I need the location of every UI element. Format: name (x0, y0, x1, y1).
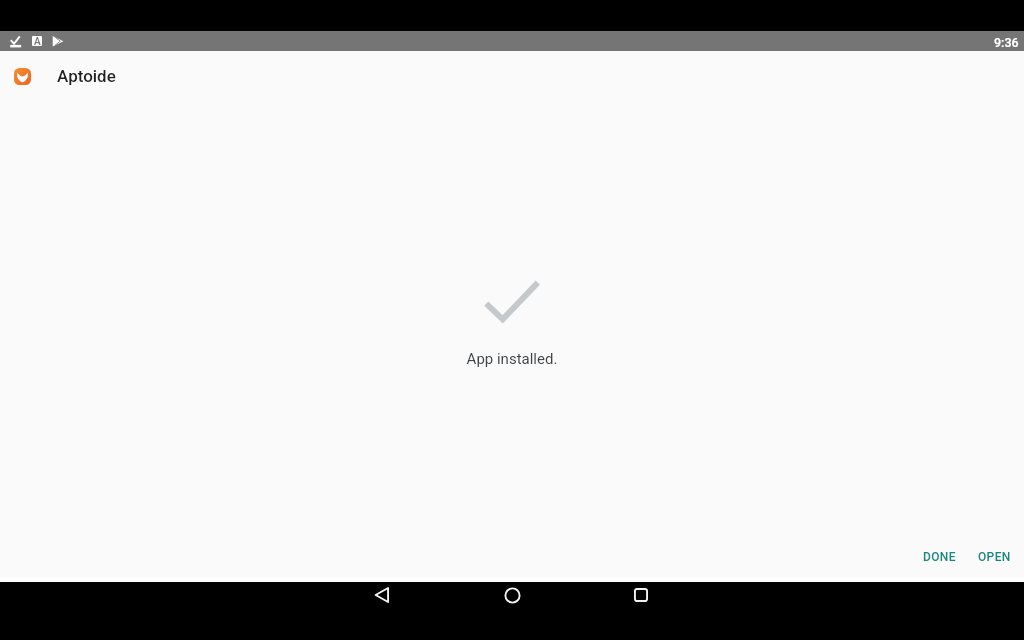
staticText: OPEN (978, 550, 1011, 564)
button[interactable]: Recent apps (624, 578, 658, 612)
staticText: DONE (923, 550, 956, 564)
button[interactable]: Home (495, 578, 529, 612)
staticText: 9:36 (994, 35, 1019, 50)
button[interactable]: OPEN (967, 543, 1022, 571)
button[interactable]: DONE (912, 543, 967, 571)
button[interactable]: Back (365, 578, 399, 612)
staticText: A (34, 36, 41, 46)
staticText: App installed. (0, 350, 1024, 368)
staticText: Aptoide (57, 66, 116, 86)
